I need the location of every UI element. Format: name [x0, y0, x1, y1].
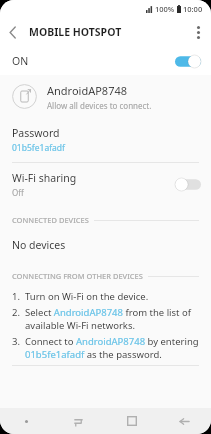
staticText: Wi-Fi sharing: [12, 171, 77, 185]
button[interactable]: AndroidAP8748: [0, 75, 211, 118]
staticText: Connect to AndroidAP8748 by entering 01b…: [25, 335, 201, 361]
button[interactable]: Wi-Fi sharing: [0, 163, 211, 206]
button[interactable]: Assistant: [0, 408, 52, 434]
button[interactable]: Recent apps: [52, 408, 105, 434]
staticText: Allow all devices to connect.: [47, 100, 152, 111]
button[interactable]: Home: [105, 408, 158, 434]
button[interactable]: Back: [0, 19, 26, 45]
staticText: 3.: [12, 335, 20, 348]
staticText: CONNECTED DEVICES: [12, 215, 89, 225]
staticText: Password: [12, 126, 60, 140]
button[interactable]: More options: [185, 19, 211, 45]
staticText: 2.: [12, 306, 20, 319]
staticText: Off: [12, 187, 24, 198]
staticText: 1.: [12, 290, 20, 303]
button[interactable]: Back: [158, 408, 211, 434]
staticText: 01b5fe1afadf: [12, 142, 66, 154]
staticText: No devices: [12, 238, 66, 252]
staticText: Turn on Wi-Fi on the device.: [25, 290, 149, 303]
staticText: 100%: [155, 4, 175, 14]
staticText: MOBILE HOTSPOT: [29, 25, 122, 39]
staticText: ON: [12, 54, 29, 68]
button[interactable]: ON: [0, 47, 211, 75]
staticText: 10:00: [183, 4, 203, 14]
button[interactable]: Password: [0, 118, 211, 162]
staticText: Select AndroidAP8748 from the list of av…: [25, 306, 201, 332]
staticText: AndroidAP8748: [47, 83, 128, 98]
staticText: CONNECTING FROM OTHER DEVICES: [12, 271, 143, 281]
